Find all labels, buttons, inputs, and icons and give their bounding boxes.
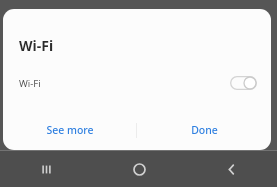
staticText: Wi-Fi [19, 77, 41, 90]
staticText: See more [46, 123, 94, 137]
staticText: Done [191, 123, 218, 137]
button[interactable]: Wi-Fi [3, 70, 271, 96]
button[interactable]: Back [185, 151, 277, 187]
button[interactable]: Home [93, 151, 185, 187]
button[interactable]: Recent apps [0, 151, 93, 187]
button[interactable]: Wi-Fi switch, off [230, 76, 257, 90]
staticText: Wi-Fi [19, 36, 54, 55]
button[interactable]: See more [3, 116, 136, 144]
button[interactable]: Done [137, 116, 271, 144]
